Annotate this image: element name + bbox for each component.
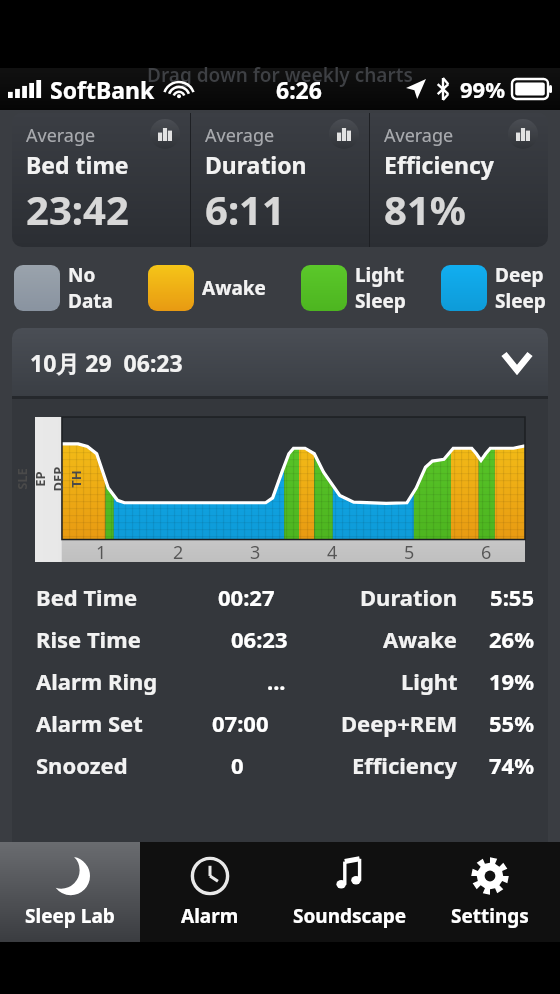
- staticText: Sleep: [495, 288, 546, 314]
- staticText: 3: [250, 540, 261, 562]
- staticText: 74%: [472, 750, 534, 780]
- staticText: Alarm: [181, 903, 239, 929]
- staticText: SLEEP DEPTH: [13, 465, 85, 493]
- button[interactable]: Snoozed: [12, 744, 548, 786]
- staticText: Awake: [202, 275, 266, 301]
- button[interactable]: Sleep Lab: [0, 842, 140, 942]
- staticText: 23:42: [26, 182, 129, 236]
- staticText: 6: [481, 540, 492, 562]
- staticText: 6:11: [205, 182, 285, 236]
- staticText: Sleep Lab: [25, 903, 115, 929]
- button[interactable]: Alarm Set: [12, 702, 548, 744]
- staticText: Deep: [495, 262, 544, 288]
- button[interactable]: Alarm Ring: [12, 660, 548, 702]
- button[interactable]: 10月 29 06:23: [12, 328, 548, 396]
- staticText: Soundscape: [293, 903, 407, 929]
- staticText: 0: [231, 750, 244, 780]
- staticText: SoftBank: [50, 74, 155, 105]
- staticText: 5: [404, 540, 415, 562]
- other: Settings: [470, 856, 510, 896]
- staticText: 26%: [472, 624, 534, 654]
- staticText: Efficiency: [352, 750, 458, 780]
- staticText: Average: [205, 123, 275, 148]
- staticText: Light: [355, 262, 404, 288]
- staticText: 6:26: [276, 74, 322, 105]
- staticText: 81%: [384, 182, 466, 236]
- staticText: 5:55: [472, 582, 534, 612]
- button[interactable]: Show chart: [508, 119, 538, 149]
- staticText: Data: [68, 288, 113, 314]
- button[interactable]: Rise Time: [12, 618, 548, 660]
- staticText: 99%: [460, 74, 506, 104]
- staticText: Bed Time: [36, 582, 138, 612]
- staticText: Deep+REM: [341, 708, 458, 738]
- staticText: No: [68, 262, 96, 288]
- button[interactable]: Average: [191, 113, 369, 247]
- staticText: Alarm Ring: [36, 666, 158, 696]
- staticText: Duration: [360, 582, 458, 612]
- button[interactable]: Light: [301, 262, 406, 314]
- staticText: Alarm Set: [36, 708, 143, 738]
- other: Sleep Lab: [50, 856, 90, 896]
- button[interactable]: No: [14, 262, 113, 314]
- other: Soundscape: [330, 856, 370, 896]
- staticText: 4: [327, 540, 338, 562]
- staticText: Bed time: [26, 149, 129, 180]
- staticText: 19%: [472, 666, 534, 696]
- staticText: Drag down for weekly charts: [147, 62, 413, 88]
- button[interactable]: Deep: [441, 262, 546, 314]
- staticText: 55%: [472, 708, 534, 738]
- staticText: 2: [173, 540, 184, 562]
- staticText: Sleep: [355, 288, 406, 314]
- staticText: Settings: [451, 903, 529, 929]
- button[interactable]: Bed Time: [12, 576, 548, 618]
- staticText: 10月 29 06:23: [30, 347, 183, 378]
- button[interactable]: Awake: [148, 265, 266, 311]
- staticText: 1: [96, 540, 107, 562]
- staticText: Awake: [383, 624, 458, 654]
- button[interactable]: Show chart: [329, 119, 359, 149]
- staticText: Average: [384, 123, 454, 148]
- button[interactable]: Average: [370, 113, 548, 247]
- staticText: Rise Time: [36, 624, 141, 654]
- staticText: Snoozed: [36, 750, 128, 780]
- staticText: ...: [267, 666, 286, 696]
- other: Alarm: [190, 856, 230, 896]
- button[interactable]: Settings: [420, 842, 560, 942]
- staticText: Efficiency: [384, 149, 494, 180]
- staticText: Average: [26, 123, 96, 148]
- other: Collapse: [504, 354, 530, 370]
- button[interactable]: Average: [12, 113, 190, 247]
- staticText: Duration: [205, 149, 307, 180]
- button[interactable]: Alarm: [140, 842, 280, 942]
- staticText: 06:23: [231, 624, 288, 654]
- staticText: 07:00: [212, 708, 269, 738]
- button[interactable]: Show chart: [150, 119, 180, 149]
- button[interactable]: Soundscape: [280, 842, 420, 942]
- staticText: 00:27: [218, 582, 275, 612]
- staticText: Light: [401, 666, 458, 696]
